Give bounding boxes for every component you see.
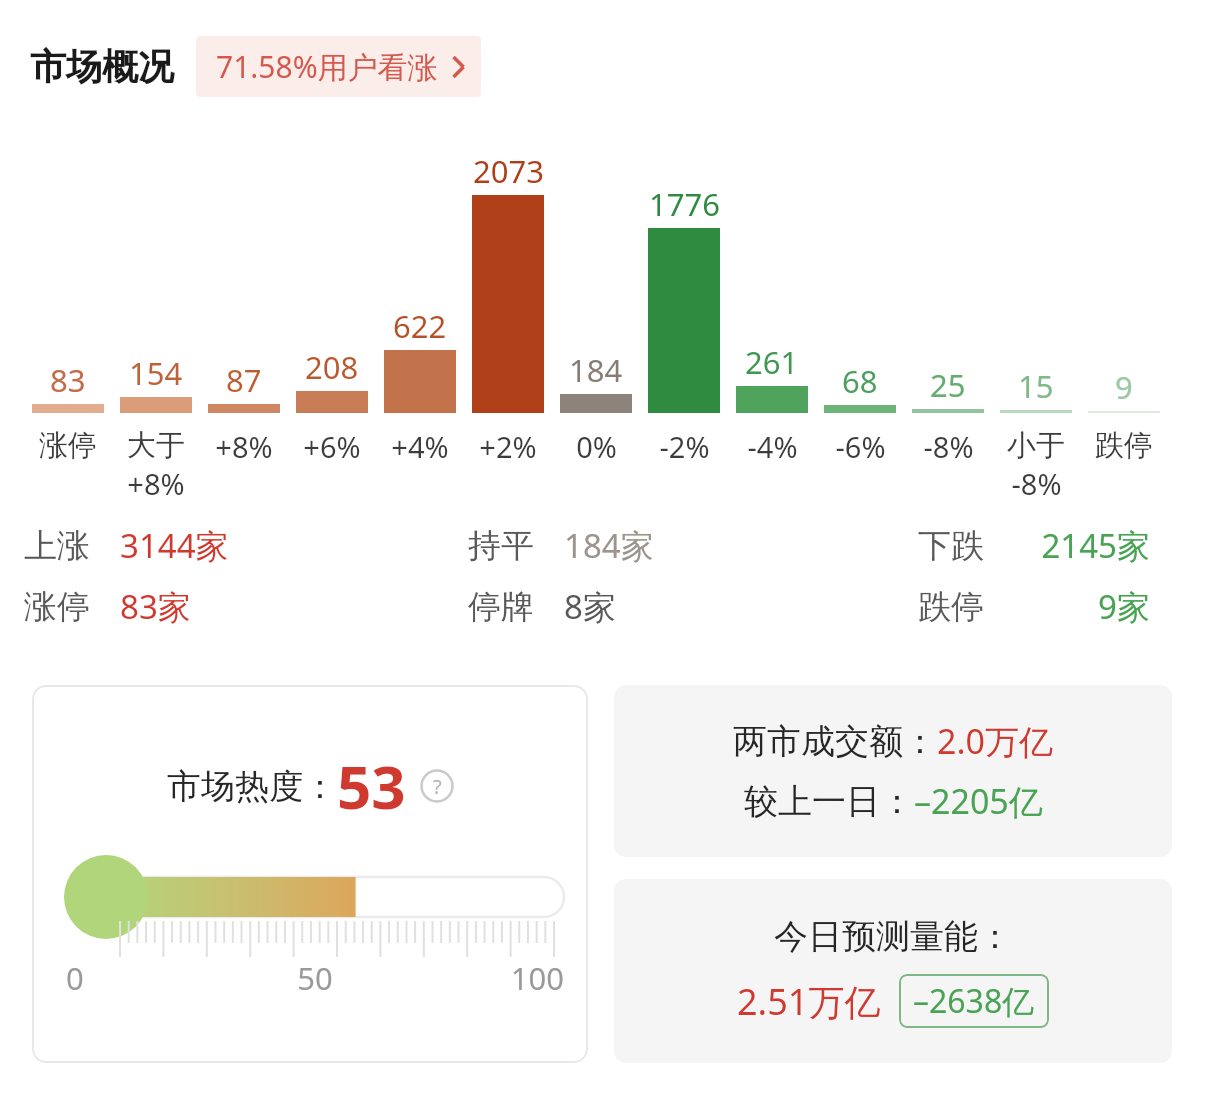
staticText: 较上一日： [744,780,914,823]
staticText: +2% [479,427,537,466]
staticText: 68 [842,360,878,402]
staticText: -4% [747,427,798,466]
staticText: ? [433,773,442,800]
button[interactable]: 两市成交额： [614,685,1172,857]
staticText: 622 [393,305,447,347]
staticText: 大于 [127,427,185,464]
staticText: 3144家 [120,523,340,568]
staticText: 154 [129,352,183,394]
staticText: –2205亿 [914,778,1043,824]
button[interactable]: 上涨 [24,523,340,568]
staticText: 0% [576,427,617,466]
staticText: 87 [226,359,262,401]
staticText: 8家 [564,584,784,629]
button[interactable]: 市场热度说明 [420,769,454,803]
staticText: 184家 [564,523,784,568]
staticText: 2145家 [1030,523,1150,568]
button[interactable]: 涨停 [24,584,340,629]
staticText: 今日预测量能： [774,915,1012,958]
staticText: 261 [745,341,799,383]
staticText: 100 [398,957,564,999]
staticText: +8% [215,427,273,466]
staticText: 83 [50,359,86,401]
staticText: 两市成交额： [733,720,937,763]
staticText: 208 [305,346,359,388]
staticText: +4% [391,427,449,466]
staticText: 持平 [468,525,564,567]
staticText: 上涨 [24,525,120,567]
staticText: 50 [232,957,398,999]
staticText: 25 [930,364,966,406]
staticText: 涨停 [24,586,120,628]
staticText: 2073 [473,150,544,192]
staticText: 9 [1115,366,1133,408]
staticText: 市场概况 [30,44,174,89]
button[interactable]: 持平 [468,523,784,568]
staticText: 184 [569,349,623,391]
staticText: 下跌 [918,525,1030,567]
staticText: +6% [303,427,361,466]
staticText: –2638亿 [913,979,1035,1023]
button[interactable]: 71.58%用户看涨 [196,36,481,97]
staticText: 53 [337,745,406,827]
staticText: 跌停 [1095,427,1153,464]
staticText: 15 [1018,365,1054,407]
staticText: 2.0万亿 [937,718,1054,764]
staticText: 小于 [1007,427,1065,464]
button[interactable]: 下跌 [918,523,1150,568]
staticText: 9家 [1030,584,1150,629]
button[interactable]: 今日预测量能： [614,879,1172,1063]
staticText: 停牌 [468,586,564,628]
staticText: -6% [835,427,886,466]
staticText: 市场热度： [167,765,337,808]
staticText: 跌停 [918,586,1030,628]
button[interactable]: 市场热度： [32,685,588,1063]
staticText: 83家 [120,584,340,629]
staticText: 2.51万亿 [737,977,881,1026]
staticText: 1776 [649,183,720,225]
staticText: 0 [66,957,232,999]
staticText: 71.58%用户看涨 [216,46,438,87]
staticText: -8% [923,427,974,466]
button[interactable]: 停牌 [468,584,784,629]
staticText: +8% [127,464,185,503]
button[interactable]: 跌停 [918,584,1150,629]
staticText: -8% [1011,464,1062,503]
staticText: 涨停 [39,427,97,464]
staticText: -2% [659,427,710,466]
